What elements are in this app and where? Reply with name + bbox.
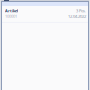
staticText: 12.04.2022 xyxy=(68,13,86,19)
staticText: 3 Pos. xyxy=(76,8,86,13)
staticText: 100001 xyxy=(5,13,17,19)
staticText: Artikel xyxy=(5,8,18,13)
button[interactable]: Artikel xyxy=(2,6,88,22)
